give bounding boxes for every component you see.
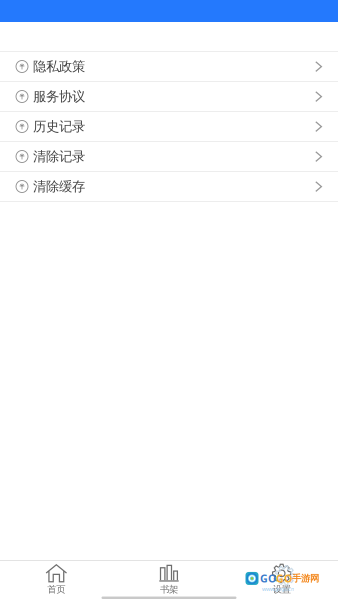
button[interactable]: 书架 (113, 559, 225, 597)
staticText: 隐私政策 (33, 58, 85, 75)
staticText: 设置 (273, 584, 291, 595)
staticText: 手游网 (292, 573, 319, 584)
staticText: 书架 (160, 584, 178, 595)
staticText: 首页 (47, 584, 65, 595)
button[interactable]: 清除记录 (0, 142, 338, 172)
button[interactable]: 隐私政策 (0, 52, 338, 82)
button[interactable]: 服务协议 (0, 82, 338, 112)
staticText: 清除缓存 (33, 178, 85, 195)
staticText: 清除记录 (33, 148, 85, 165)
button[interactable]: 设置 (225, 559, 338, 597)
staticText: GO (260, 571, 276, 586)
button[interactable]: 历史记录 (0, 112, 338, 142)
button[interactable]: 清除缓存 (0, 172, 338, 202)
button[interactable]: 首页 (0, 559, 113, 597)
staticText: www.gogo.cn (262, 585, 294, 593)
staticText: 服务协议 (33, 88, 85, 105)
staticText: GO (276, 571, 292, 586)
staticText: 历史记录 (33, 118, 85, 135)
